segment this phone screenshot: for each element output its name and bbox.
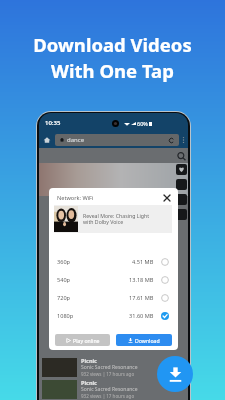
staticText: 13.18 MB: [129, 276, 154, 284]
staticText: 540p: [57, 276, 71, 284]
button[interactable]: Play online: [55, 334, 110, 346]
staticText: Play online: [73, 337, 100, 344]
staticText: Sonic Sacred Resonance: [81, 364, 138, 371]
staticText: Sonic Sacred Resonance: [81, 386, 138, 393]
button[interactable]: 720p: [49, 289, 178, 307]
button[interactable]: dance: [55, 134, 179, 146]
staticText: With One Tap: [51, 58, 174, 83]
button[interactable]: Comment: [176, 179, 187, 190]
button[interactable]: Picnic: [42, 356, 185, 378]
staticText: 720p: [57, 294, 71, 302]
button[interactable]: Share: [176, 194, 187, 205]
staticText: 4.51 MB: [132, 258, 154, 266]
staticText: Download Videos: [33, 32, 192, 57]
staticText: 17.61 MB: [129, 294, 154, 302]
staticText: 31.60 MB: [129, 312, 154, 320]
staticText: Picnic: [81, 379, 97, 386]
staticText: dance: [67, 136, 85, 144]
staticText: Network: WiFi: [57, 194, 94, 202]
button[interactable]: Picnic: [42, 378, 185, 400]
button[interactable]: Reveal More: Chasing Light with Dolby Vo…: [54, 205, 172, 233]
staticText: 1080p: [57, 312, 74, 320]
staticText: 932 views | 17 hours ago: [81, 393, 135, 399]
button[interactable]: 540p: [49, 271, 178, 289]
staticText: 932 views | 17 hours ago: [81, 371, 135, 377]
staticText: 60%: [137, 120, 148, 127]
button[interactable]: Download: [157, 356, 193, 392]
button[interactable]: More: [176, 209, 187, 220]
button[interactable]: 360p: [49, 253, 178, 271]
staticText: Download: [135, 337, 160, 344]
button[interactable]: Close: [162, 193, 172, 203]
button[interactable]: Download: [116, 334, 172, 346]
staticText: Picnic: [81, 357, 97, 364]
button[interactable]: Search: [176, 151, 187, 162]
staticText: 10:35: [45, 119, 61, 127]
staticText: Reveal More: Chasing Light with Dolby Vo…: [83, 212, 150, 226]
button[interactable]: Favorite: [176, 164, 187, 175]
button[interactable]: 1080p: [49, 307, 178, 325]
staticText: 360p: [57, 258, 71, 266]
